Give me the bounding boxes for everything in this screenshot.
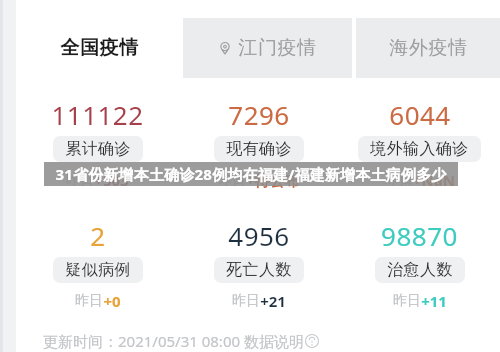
staticText: 111122 (51, 97, 144, 132)
staticText: 4956 (228, 218, 290, 253)
staticText: 昨日 (75, 292, 103, 310)
button[interactable]: 2 (17, 218, 178, 311)
other: 数据说明 (305, 334, 319, 348)
staticText: 海外疫情 (389, 36, 468, 60)
staticText: 2 (90, 218, 106, 253)
button[interactable]: 全国疫情 (17, 18, 182, 78)
staticText: +503 (94, 170, 129, 190)
button[interactable]: 98870 (339, 218, 500, 311)
staticText: 死亡人数 (226, 260, 292, 280)
button[interactable]: 海外疫情 (356, 18, 500, 78)
staticText: 全国疫情 (60, 36, 139, 60)
staticText: 31省份新增本土确诊28例均在福建/福建新增本土病例多少 (55, 164, 447, 184)
staticText: 累计确诊 (65, 139, 131, 159)
staticText: 6044 (389, 97, 451, 132)
staticText: +11 (421, 291, 447, 311)
staticText: 更新时间：2021/05/31 08:00 数据说明 (43, 331, 304, 351)
button[interactable]: 6044 (339, 97, 500, 190)
staticText: 昨日 (393, 292, 421, 310)
staticText: 疑似病例 (65, 260, 131, 280)
button[interactable]: 4956 (178, 218, 339, 311)
button[interactable]: 7296 (178, 97, 339, 190)
staticText: 昨日 (218, 171, 246, 189)
staticText: 现有确诊 (226, 139, 292, 159)
button[interactable]: 更新时间：2021/05/31 08:00 数据说明 (43, 331, 500, 351)
button[interactable]: 江门疫情 (183, 18, 352, 78)
staticText: 7296 (228, 97, 290, 132)
staticText: 昨日 (232, 292, 260, 310)
button[interactable]: 111122 (17, 97, 178, 190)
staticText: 治愈人数 (387, 260, 453, 280)
staticText: 江门疫情 (238, 36, 317, 60)
staticText: +21 (260, 291, 286, 311)
staticText: 98870 (381, 218, 458, 253)
staticText: +NaN (413, 170, 455, 190)
staticText: +待公布 (246, 170, 300, 190)
staticText: 昨日 (66, 171, 94, 189)
staticText: +0 (103, 291, 121, 311)
staticText: 昨日 (385, 171, 413, 189)
staticText: 境外输入确诊 (370, 139, 469, 159)
